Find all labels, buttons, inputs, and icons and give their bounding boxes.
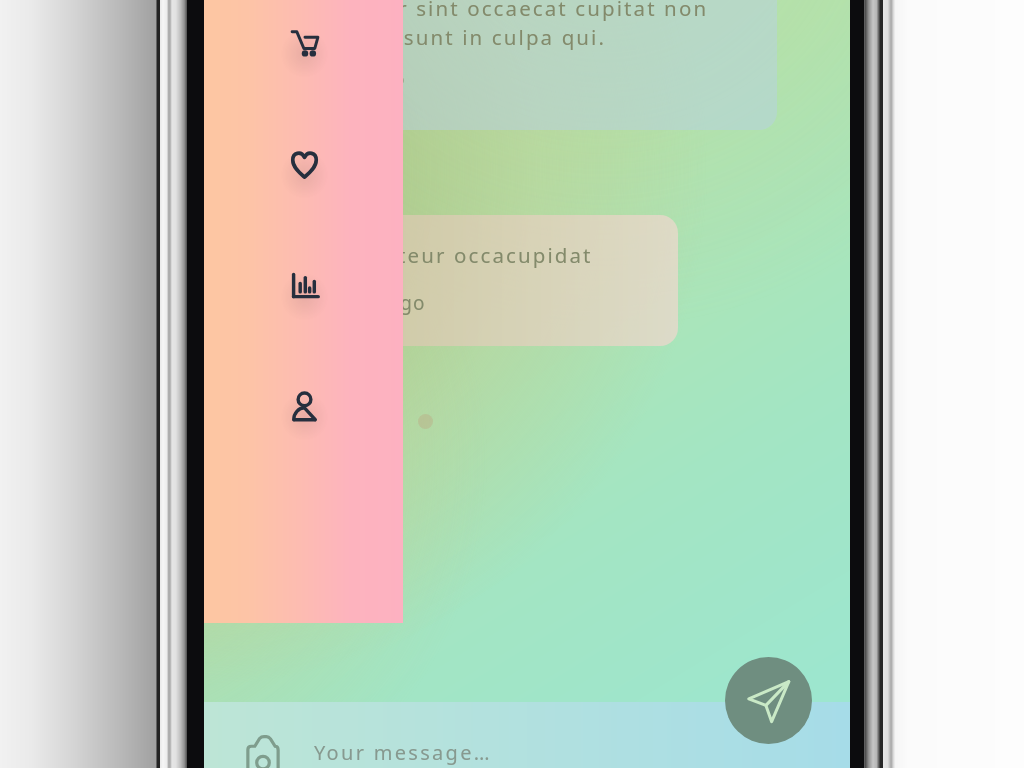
- staticText: Your message…: [314, 739, 492, 766]
- staticText: consectetur sint occaecat cupitat non: [272, 0, 709, 22]
- staticText: proident sunt in culpa qui.: [297, 23, 607, 51]
- staticText: 2 minutes ago: [285, 290, 426, 316]
- button[interactable]: Send: [725, 657, 812, 744]
- button[interactable]: Camera: [246, 727, 280, 768]
- staticText: excepteur occacupidat: [332, 241, 593, 269]
- button[interactable]: Favourites: [204, 130, 403, 198]
- button[interactable]: Statistics: [204, 252, 403, 320]
- staticText: 8 minutes ago: [265, 66, 406, 92]
- button[interactable]: [204, 215, 678, 346]
- button[interactable]: Camera: [204, 702, 850, 768]
- button[interactable]: [204, 0, 777, 130]
- button[interactable]: Profile: [204, 372, 403, 440]
- button[interactable]: Cart: [204, 9, 403, 77]
